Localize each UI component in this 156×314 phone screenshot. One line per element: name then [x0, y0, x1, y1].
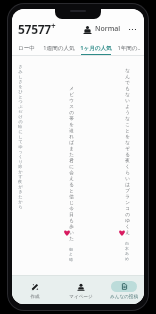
- staticText: え: [125, 230, 130, 236]
- staticText: 1ヶ月の人気: [80, 44, 112, 52]
- staticText: じ: [69, 200, 74, 206]
- staticText: みんなの投稿: [110, 294, 138, 300]
- staticText: の: [18, 119, 23, 124]
- staticText: ゆ: [125, 218, 130, 224]
- staticText: き: [18, 189, 23, 194]
- button[interactable]: Like: [62, 228, 71, 237]
- staticText: け: [18, 114, 23, 119]
- staticText: ロー中: [18, 45, 35, 52]
- staticText: た: [18, 194, 23, 199]
- staticText: え: [69, 176, 74, 182]
- staticText: ス: [69, 104, 74, 110]
- staticText: で: [125, 80, 130, 86]
- staticText: 朝: [69, 247, 73, 252]
- staticText: 今: [69, 206, 74, 212]
- staticText: と: [18, 94, 23, 99]
- button[interactable]: 作成: [12, 280, 58, 301]
- staticText: ん: [125, 74, 130, 80]
- staticText: ま: [69, 146, 74, 152]
- staticText: と: [125, 128, 130, 134]
- staticText: 信: [69, 194, 74, 200]
- staticText: マイページ: [69, 294, 93, 300]
- staticText: た: [69, 236, 74, 242]
- staticText: な: [125, 116, 130, 122]
- staticText: も: [125, 86, 130, 92]
- staticText: も: [69, 218, 74, 224]
- staticText: く: [18, 154, 23, 159]
- staticText: か: [18, 199, 23, 204]
- staticText: の: [125, 212, 130, 218]
- staticText: よ: [125, 104, 130, 110]
- button[interactable]: な: [120, 68, 134, 261]
- staticText: 夜: [18, 179, 22, 184]
- staticText: さ: [18, 79, 23, 84]
- button[interactable]: 1ヶ月の人気: [77, 44, 114, 55]
- staticText: に: [18, 129, 23, 134]
- staticText: 会: [69, 170, 74, 176]
- staticText: る: [125, 152, 130, 158]
- button[interactable]: マイページ: [58, 280, 104, 301]
- staticText: め: [125, 256, 129, 261]
- staticText: い: [125, 176, 130, 182]
- button[interactable]: Like: [117, 228, 126, 237]
- staticText: れ: [69, 134, 74, 140]
- staticText: し: [18, 74, 23, 79]
- staticText: く: [125, 164, 130, 170]
- staticText: う: [125, 110, 130, 116]
- staticText: な: [125, 140, 130, 146]
- staticText: ウ: [69, 98, 74, 104]
- button[interactable]: Normal: [81, 22, 123, 36]
- staticText: ら: [125, 170, 130, 176]
- staticText: っ: [18, 149, 23, 154]
- staticText: ぞ: [125, 146, 130, 152]
- staticText: と: [69, 188, 74, 194]
- staticText: さ: [18, 64, 23, 69]
- staticText: 君: [69, 158, 74, 164]
- button[interactable]: 1週間の人気: [40, 44, 77, 55]
- staticText: 57577: [18, 21, 51, 37]
- staticText: ン: [125, 200, 130, 206]
- staticText: Normal: [95, 24, 121, 34]
- staticText: +: [51, 20, 56, 31]
- staticText: い: [125, 98, 130, 104]
- staticText: だ: [18, 109, 23, 114]
- button[interactable]: 1年間の..: [114, 44, 144, 55]
- staticText: 白: [125, 241, 129, 246]
- staticText: の: [69, 110, 74, 116]
- button[interactable]: さ: [13, 64, 27, 209]
- staticText: ラ: [125, 194, 130, 200]
- button[interactable]: メ: [64, 86, 78, 262]
- staticText: く: [125, 224, 130, 230]
- button[interactable]: ロー中: [12, 45, 40, 55]
- staticText: 溶: [18, 164, 22, 169]
- staticText: て: [18, 139, 23, 144]
- staticText: り: [18, 159, 23, 164]
- staticText: 猫: [69, 257, 73, 262]
- staticText: ば: [69, 140, 74, 146]
- staticText: 辿: [69, 128, 74, 134]
- staticText: 飴: [18, 124, 22, 129]
- staticText: 木: [125, 246, 129, 251]
- staticText: を: [125, 134, 130, 140]
- staticText: メ: [69, 86, 74, 92]
- staticText: 1週間の人気: [43, 44, 75, 52]
- staticText: い: [69, 230, 74, 236]
- button[interactable]: More options: [126, 23, 139, 36]
- staticText: ひ: [18, 89, 23, 94]
- staticText: す: [18, 174, 23, 179]
- staticText: ビ: [69, 92, 74, 98]
- staticText: ゆ: [18, 144, 23, 149]
- staticText: が: [18, 184, 23, 189]
- staticText: に: [69, 164, 74, 170]
- staticText: な: [125, 92, 130, 98]
- staticText: は: [125, 182, 130, 188]
- staticText: あ: [125, 251, 129, 256]
- staticText: を: [69, 122, 74, 128]
- staticText: る: [69, 182, 74, 188]
- staticText: し: [18, 134, 23, 139]
- staticText: 歩: [69, 224, 74, 230]
- staticText: コ: [125, 206, 130, 212]
- staticText: ブ: [125, 188, 130, 194]
- staticText: 日: [69, 212, 74, 218]
- button[interactable]: みんなの投稿: [104, 280, 144, 301]
